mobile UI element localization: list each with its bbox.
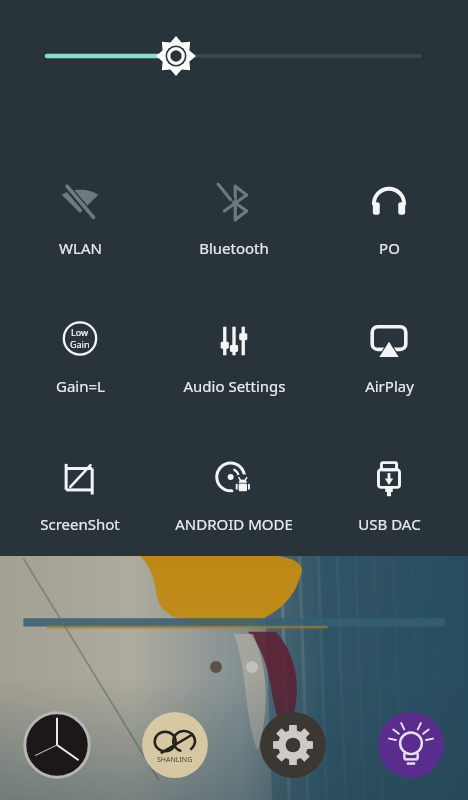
- button[interactable]: PO: [314, 182, 464, 258]
- staticText: WLAN: [59, 238, 102, 258]
- staticText: AirPlay: [365, 376, 414, 396]
- staticText: Gain: [70, 338, 90, 350]
- button[interactable]: USB DAC: [314, 458, 464, 534]
- button[interactable]: Low: [5, 320, 155, 396]
- staticText: ScreenShot: [40, 514, 120, 534]
- button[interactable]: Audio Settings: [159, 320, 309, 396]
- button[interactable]: Clock: [22, 710, 92, 780]
- staticText: ANDROID MODE: [175, 514, 293, 534]
- button[interactable]: ANDROID MODE: [159, 458, 309, 534]
- staticText: Bluetooth: [199, 238, 269, 258]
- button[interactable]: Bluetooth: [159, 182, 309, 258]
- staticText: Gain=L: [56, 376, 105, 396]
- button[interactable]: AirPlay: [314, 320, 464, 396]
- button[interactable]: [0, 0, 468, 112]
- staticText: PO: [379, 238, 400, 258]
- button[interactable]: Flashlight: [376, 710, 446, 780]
- button[interactable]: Settings: [258, 710, 328, 780]
- staticText: Low: [71, 326, 89, 338]
- staticText: USB DAC: [358, 514, 421, 534]
- button[interactable]: ScreenShot: [5, 458, 155, 534]
- button[interactable]: WLAN: [5, 182, 155, 258]
- staticText: Audio Settings: [183, 376, 286, 396]
- staticText: SHANLING: [157, 755, 193, 765]
- button[interactable]: Shanling: [140, 710, 210, 780]
